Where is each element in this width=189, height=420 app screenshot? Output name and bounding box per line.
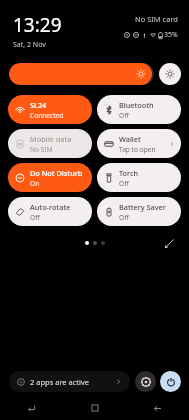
button[interactable]: Auto brightness [159,63,181,85]
button[interactable] [9,63,154,85]
staticText: On [30,179,40,188]
staticText: Battery Saver [119,202,166,212]
staticText: 13:29 [13,12,62,38]
button[interactable]: Bluetooth [97,95,181,124]
button[interactable]: Home [63,399,126,417]
button[interactable]: Back [126,399,189,417]
staticText: Off [30,213,40,222]
button[interactable]: Battery Saver [97,197,181,226]
button[interactable]: 2 apps are active [9,371,130,392]
staticText: Off [119,111,129,120]
button[interactable]: Mobile data [8,129,92,158]
staticText: Off [119,213,129,222]
button[interactable]: Auto-rotate [8,197,92,226]
button[interactable]: Wallet [97,129,181,158]
button[interactable]: Settings [135,371,156,392]
button[interactable]: Edit tiles [161,235,177,251]
staticText: Off [119,179,129,188]
staticText: Connected [30,111,64,120]
staticText: No SIM [30,145,53,154]
staticText: Tap to open [119,145,156,154]
button[interactable]: SL24 [8,95,92,124]
staticText: Mobile data [30,134,72,144]
staticText: Auto-rotate [30,202,71,212]
staticText: Torch [119,168,139,178]
button[interactable]: Torch [97,163,181,192]
staticText: 35% [164,30,178,40]
staticText: Wallet [119,134,141,144]
button[interactable]: Power [160,371,181,392]
staticText: Bluetooth [119,100,154,110]
staticText: SL24 [30,100,47,110]
staticText: Do Not Disturb [30,168,83,178]
staticText: No SIM card [135,14,178,24]
button[interactable]: Recents [0,399,63,417]
staticText: Sat, 2 Nov [13,40,46,50]
staticText: 2 apps are active [30,377,115,387]
button[interactable]: Do Not Disturb [8,163,92,192]
